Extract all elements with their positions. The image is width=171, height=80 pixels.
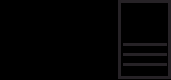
button[interactable]: Card [118, 0, 171, 79]
